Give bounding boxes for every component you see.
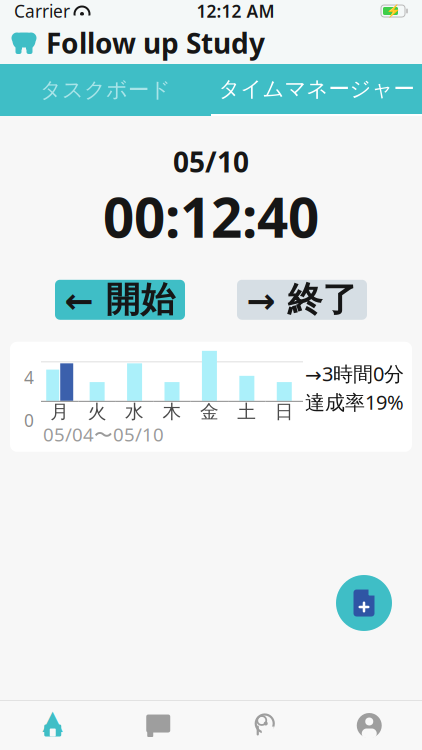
staticText: 金 [200,400,219,423]
button[interactable]: Account [316,701,422,750]
staticText: 月 [50,400,69,423]
staticText: → 終了 [246,278,357,321]
button[interactable]: タイムマネージャー [211,64,422,116]
button[interactable]: Home [0,701,105,750]
staticText: 木 [162,400,181,423]
button[interactable]: Hearing [211,701,316,750]
staticText: 00:12:40 [103,180,319,253]
staticText: Carrier [14,0,70,22]
staticText: 火 [88,400,107,423]
staticText: 達成率19% [305,389,404,415]
staticText: 水 [125,400,144,423]
button[interactable]: Add record [333,572,395,634]
staticText: 12:12 AM [196,0,274,22]
staticText: 4 [24,366,34,389]
staticText: 05/04〜05/10 [43,422,164,447]
staticText: Follow up Study [46,24,265,62]
staticText: ▲ [42,704,63,735]
staticText: 05/10 [173,143,249,180]
staticText: タスクボード [40,77,171,103]
button[interactable]: → 終了 [237,280,367,320]
staticText: 日 [275,400,294,423]
staticText: 土 [237,400,256,423]
staticText: ⚡ [385,4,400,18]
button[interactable]: タスクボード [0,64,211,116]
button[interactable]: Messages [105,701,211,750]
button[interactable]: ← 開始 [55,280,185,320]
staticText: 0 [24,409,34,432]
staticText: タイムマネージャー [218,76,414,102]
staticText: ← 開始 [64,278,175,321]
staticText: →3時間0分 [305,360,404,387]
